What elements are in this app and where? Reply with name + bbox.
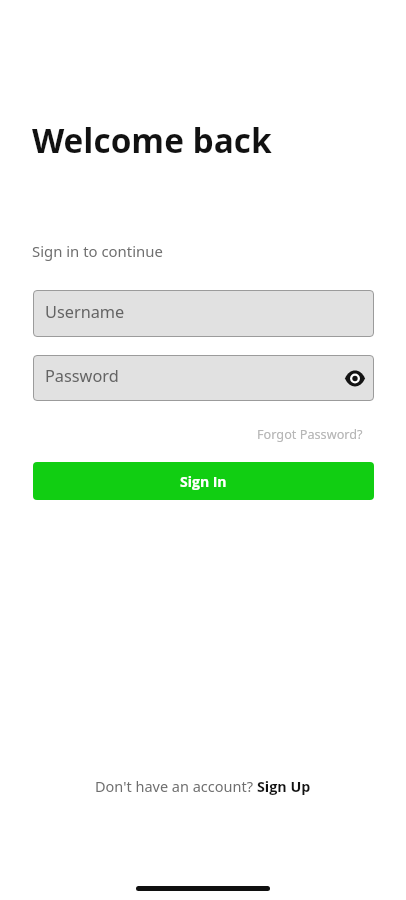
staticText: Welcome back (32, 117, 272, 162)
button[interactable]: Sign In (33, 462, 374, 500)
staticText: Sign in to continue (32, 241, 163, 261)
button[interactable]: Forgot Password? (257, 425, 363, 442)
staticText: Username (45, 301, 125, 323)
button[interactable]: Show password (341, 364, 369, 392)
staticText: Don't have an account? (95, 776, 257, 796)
staticText: Forgot Password? (257, 425, 363, 442)
button[interactable]: Password (33, 355, 374, 401)
staticText: Sign Up (257, 777, 311, 796)
button[interactable]: Sign Up (257, 777, 311, 796)
staticText: Password (45, 365, 119, 387)
button[interactable]: Username (33, 290, 374, 337)
staticText: Sign In (180, 472, 227, 491)
